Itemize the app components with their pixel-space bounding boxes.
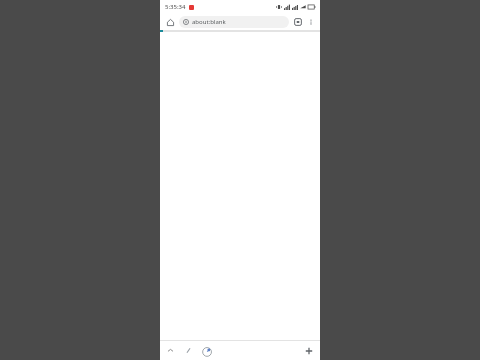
staticText: about:blank [192, 18, 226, 26]
button[interactable]: about:blank [179, 16, 289, 28]
button[interactable]: Expand [163, 343, 178, 358]
button[interactable]: More options [305, 16, 317, 28]
staticText: 5:35:34 [165, 3, 186, 11]
button[interactable]: Tabs [291, 15, 305, 29]
button[interactable]: Record [199, 343, 215, 359]
button[interactable]: Home [163, 15, 177, 29]
button[interactable]: Clear [181, 343, 196, 358]
button[interactable]: Add [301, 343, 317, 359]
